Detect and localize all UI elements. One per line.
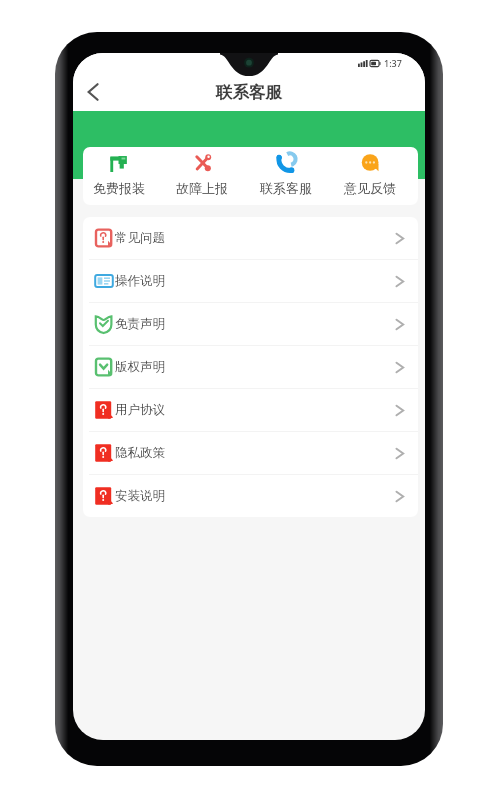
button[interactable]: 隐私政策 <box>83 432 418 474</box>
staticText: 联系客服 <box>216 82 282 103</box>
staticText: 联系客服 <box>260 180 312 196</box>
staticText: 用户协议 <box>115 402 165 418</box>
staticText: 意见反馈 <box>344 180 396 196</box>
staticText: 免责声明 <box>115 316 165 332</box>
button[interactable]: 联系客服 <box>244 147 328 205</box>
button[interactable]: 故障上报 <box>160 147 244 205</box>
staticText: 安装说明 <box>115 488 165 504</box>
button[interactable]: 安装说明 <box>83 475 418 517</box>
button[interactable]: 免费报装 <box>83 147 160 205</box>
staticText: 隐私政策 <box>115 445 165 461</box>
button[interactable]: Back <box>78 77 108 107</box>
button[interactable]: 免责声明 <box>83 303 418 345</box>
staticText: 常见问题 <box>115 230 165 246</box>
button[interactable]: 常见问题 <box>83 217 418 259</box>
staticText: 操作说明 <box>115 273 165 289</box>
staticText: 免费报装 <box>93 180 145 196</box>
button[interactable]: 版权声明 <box>83 346 418 388</box>
button[interactable]: 用户协议 <box>83 389 418 431</box>
button[interactable]: 意见反馈 <box>328 147 412 205</box>
staticText: 故障上报 <box>176 180 228 196</box>
staticText: 版权声明 <box>115 359 165 375</box>
button[interactable]: 操作说明 <box>83 260 418 302</box>
staticText: 1:37 <box>384 57 402 69</box>
